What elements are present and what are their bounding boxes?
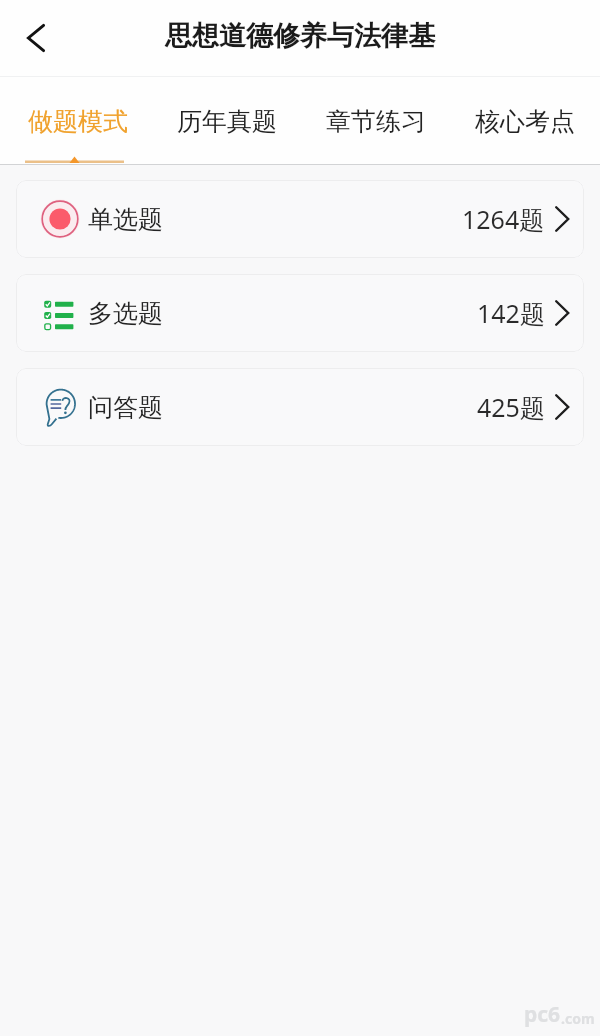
staticText: 思想道德修养与法律基 xyxy=(165,19,435,53)
button[interactable]: 核心考点 xyxy=(465,77,585,161)
staticText: pc6 xyxy=(524,1000,561,1029)
staticText: 单选题 xyxy=(88,204,163,235)
button[interactable]: 问答题 xyxy=(16,368,584,446)
staticText: 核心考点 xyxy=(475,106,575,137)
staticText: 章节练习 xyxy=(326,106,426,137)
button[interactable]: 单选题 xyxy=(16,180,584,258)
staticText: 142题 xyxy=(477,296,545,330)
staticText: 1264题 xyxy=(462,202,545,236)
staticText: 历年真题 xyxy=(177,106,277,137)
button[interactable]: 多选题 xyxy=(16,274,584,352)
button[interactable]: Back xyxy=(2,0,70,76)
staticText: 做题模式 xyxy=(28,106,128,137)
staticText: .com xyxy=(561,1009,595,1028)
staticText: 问答题 xyxy=(88,392,163,423)
button[interactable]: 做题模式 xyxy=(18,77,138,161)
staticText: 多选题 xyxy=(88,298,163,329)
button[interactable]: 章节练习 xyxy=(316,77,436,161)
staticText: 425题 xyxy=(477,390,545,424)
button[interactable]: 历年真题 xyxy=(167,77,287,161)
